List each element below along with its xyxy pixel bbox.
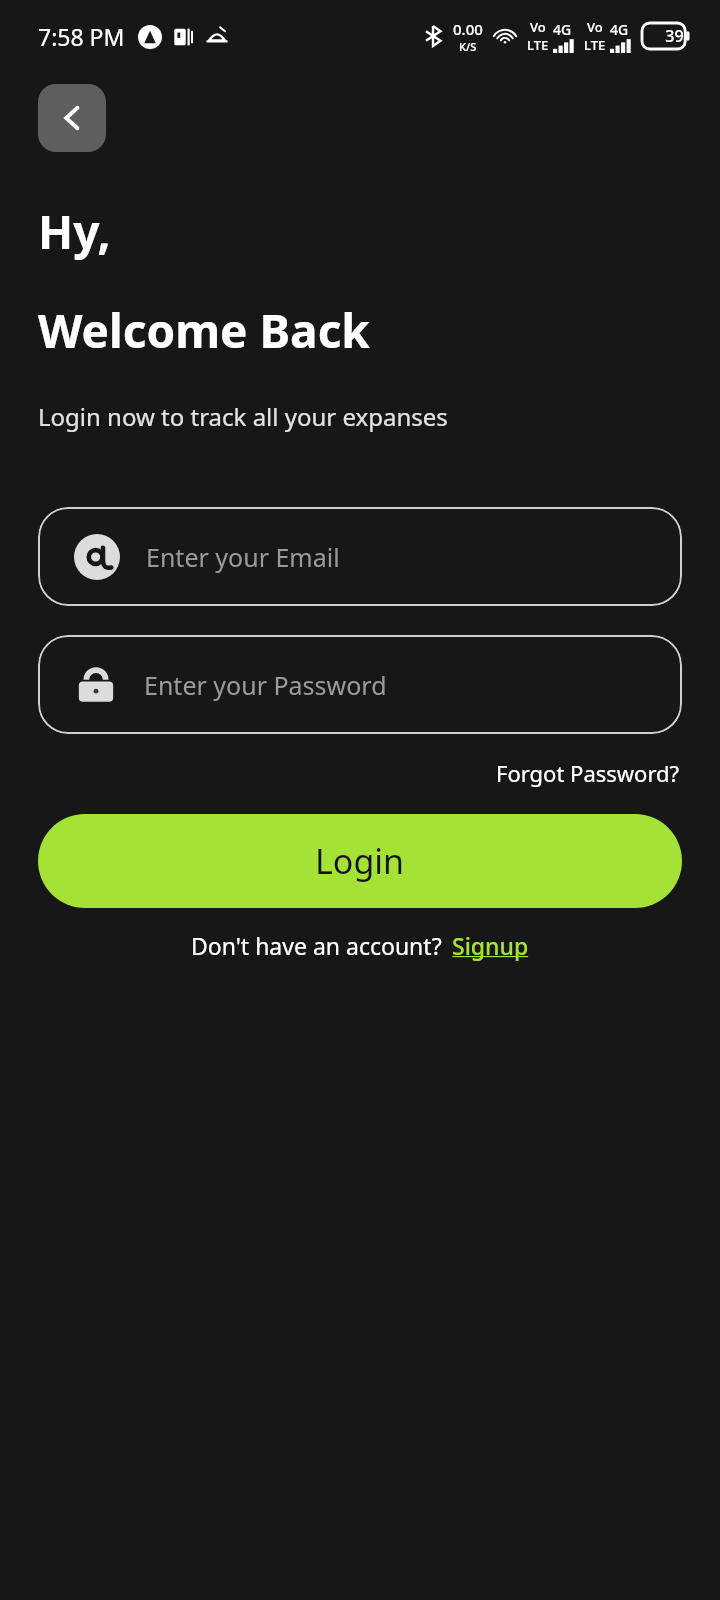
staticText: 7:58 PM: [38, 21, 125, 52]
staticText: LTE: [584, 36, 606, 54]
button[interactable]: Login: [38, 814, 682, 908]
staticText: Login: [315, 838, 405, 884]
staticText: Enter your Email: [146, 540, 340, 574]
staticText: LTE: [527, 36, 549, 54]
staticText: Login now to track all your expanses: [38, 400, 448, 433]
button[interactable]: Enter your Password: [38, 635, 682, 734]
staticText: Signup: [452, 930, 529, 961]
staticText: 4G: [610, 20, 629, 39]
staticText: Vo: [530, 18, 546, 36]
button[interactable]: Back: [38, 84, 106, 152]
staticText: 0.00: [453, 19, 483, 39]
button[interactable]: Forgot Password?: [494, 756, 682, 790]
staticText: Welcome Back: [38, 299, 370, 362]
button[interactable]: Signup: [452, 930, 529, 961]
staticText: K/S: [459, 39, 477, 54]
staticText: Enter your Password: [144, 668, 387, 702]
staticText: 39: [665, 25, 684, 47]
staticText: Hy,: [38, 200, 111, 263]
staticText: Vo: [587, 18, 603, 36]
staticText: 4G: [553, 20, 572, 39]
staticText: Don't have an account?: [191, 930, 442, 961]
staticText: Forgot Password?: [496, 758, 680, 788]
button[interactable]: Enter your Email: [38, 507, 682, 606]
